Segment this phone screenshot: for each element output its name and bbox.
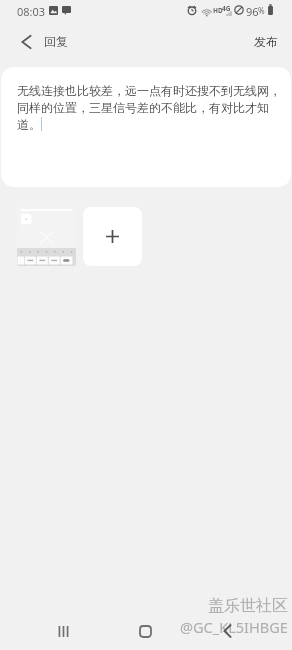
button[interactable]: Attached image xyxy=(17,207,76,266)
staticText: % xyxy=(258,5,265,16)
staticText: 盖乐世社区 xyxy=(208,596,288,616)
button[interactable]: 回复 xyxy=(0,29,80,54)
staticText: 回复 xyxy=(44,34,68,49)
button[interactable]: Recent apps xyxy=(42,616,85,646)
button[interactable]: Home xyxy=(124,616,167,646)
button[interactable]: 无线连接也比较差，远一点有时还搜不到无线网，同样的位置，三星信号差的不能比，有对… xyxy=(1,67,291,187)
button[interactable]: 发布 xyxy=(240,28,292,55)
staticText: HD xyxy=(213,6,223,15)
staticText: 发布 xyxy=(254,34,278,49)
staticText: 4G xyxy=(222,4,231,13)
staticText: 无线连接也比较差，远一点有时还搜不到无线网，同样的位置，三星信号差的不能比，有对… xyxy=(17,83,283,132)
staticText: 96 xyxy=(246,4,259,19)
staticText: @GC_KL5IHBGE xyxy=(180,617,288,637)
button[interactable]: Add image xyxy=(83,207,142,266)
staticText: 08:03 xyxy=(17,4,46,19)
button[interactable]: Back xyxy=(206,616,249,646)
